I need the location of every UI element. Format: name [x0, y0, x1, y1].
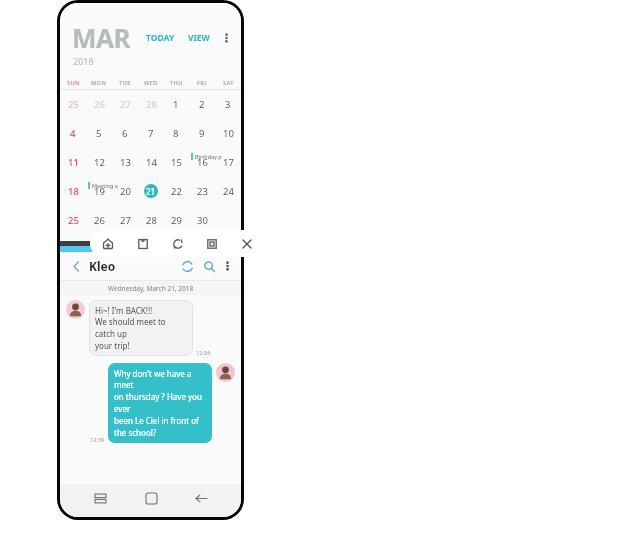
- button[interactable]: 30: [189, 207, 215, 236]
- button[interactable]: 25: [60, 91, 86, 120]
- staticText: 12:34: [196, 349, 211, 356]
- staticText: 9: [199, 127, 205, 140]
- staticText: 28: [146, 214, 157, 227]
- staticText: 2: [199, 98, 205, 111]
- button[interactable]: 24: [215, 178, 241, 207]
- staticText: 21: [146, 186, 156, 197]
- button[interactable]: 2: [189, 91, 215, 120]
- staticText: 4: [70, 127, 76, 140]
- staticText: VIEW: [188, 32, 210, 44]
- button[interactable]: 1: [163, 91, 189, 120]
- button[interactable]: 12: [86, 149, 112, 178]
- button[interactable]: 28: [138, 207, 164, 236]
- button[interactable]: 19: [86, 178, 112, 207]
- staticText: 24: [223, 185, 234, 198]
- button[interactable]: Refresh: [168, 234, 188, 254]
- button[interactable]: 29: [163, 207, 189, 236]
- staticText: WED: [144, 79, 158, 87]
- button[interactable]: Recents: [89, 487, 111, 509]
- staticText: 27: [120, 214, 131, 227]
- staticText: 19: [94, 185, 105, 198]
- staticText: SUN: [67, 79, 80, 87]
- button[interactable]: 26: [86, 207, 112, 236]
- staticText: 23: [197, 185, 208, 198]
- button[interactable]: More: [221, 260, 233, 272]
- button[interactable]: 21: [138, 178, 164, 207]
- button[interactable]: 4: [60, 120, 86, 149]
- button[interactable]: 26: [86, 91, 112, 120]
- staticText: 22: [171, 185, 182, 198]
- staticText: 11: [68, 156, 79, 169]
- staticText: 13: [120, 156, 131, 169]
- staticText: Birthday p: [195, 153, 222, 160]
- staticText: 15: [171, 156, 182, 169]
- staticText: 30: [197, 214, 208, 227]
- button[interactable]: Hi~! I'm BACK!!! We should meet to catch…: [89, 300, 193, 356]
- staticText: SAT: [223, 79, 234, 87]
- staticText: 12: [94, 156, 105, 169]
- staticText: TUE: [119, 79, 131, 87]
- staticText: Hi~! I'm BACK!!! We should meet to catch…: [95, 305, 187, 351]
- button[interactable]: 16: [189, 149, 215, 178]
- button[interactable]: 23: [189, 178, 215, 207]
- button[interactable]: Back: [68, 258, 84, 274]
- button[interactable]: 25: [60, 207, 86, 236]
- button[interactable]: 5: [86, 120, 112, 149]
- staticText: 1: [173, 98, 179, 111]
- staticText: 27: [120, 98, 131, 111]
- button[interactable]: 28: [138, 91, 164, 120]
- button[interactable]: 22: [163, 178, 189, 207]
- button[interactable]: 8: [163, 120, 189, 149]
- staticText: 3: [225, 98, 231, 111]
- button[interactable]: 17: [215, 149, 241, 178]
- button[interactable]: Search: [201, 258, 217, 274]
- button[interactable]: Home: [98, 234, 118, 254]
- button[interactable]: Stop: [202, 234, 222, 254]
- button[interactable]: VIEW: [186, 30, 212, 46]
- staticText: 20: [120, 185, 131, 198]
- button[interactable]: Close: [237, 234, 257, 254]
- button[interactable]: 15: [163, 149, 189, 178]
- staticText: FRI: [197, 79, 207, 87]
- button[interactable]: 27: [112, 91, 138, 120]
- button[interactable]: Back: [190, 487, 212, 509]
- staticText: 12:39: [90, 436, 105, 443]
- button[interactable]: 20: [112, 178, 138, 207]
- staticText: 26: [94, 214, 105, 227]
- button[interactable]: Bookmark: [133, 234, 153, 254]
- staticText: 2018: [73, 55, 94, 67]
- button[interactable]: 10: [215, 120, 241, 149]
- button[interactable]: 3: [215, 91, 241, 120]
- button[interactable]: 13: [112, 149, 138, 178]
- staticText: 18: [68, 185, 79, 198]
- staticText: TODAY: [146, 32, 175, 44]
- button[interactable]: 11: [60, 149, 86, 178]
- staticText: 16: [197, 156, 208, 169]
- staticText: MON: [91, 79, 107, 87]
- button[interactable]: Why don't we have a meet on thursday ? H…: [108, 363, 212, 443]
- staticText: 28: [146, 98, 157, 111]
- button[interactable]: 27: [112, 207, 138, 236]
- button[interactable]: More options: [220, 32, 232, 44]
- staticText: Kleo: [89, 258, 116, 274]
- staticText: 26: [94, 98, 105, 111]
- staticText: 10: [223, 127, 234, 140]
- button[interactable]: Call: [179, 258, 195, 274]
- button[interactable]: 6: [112, 120, 138, 149]
- staticText: 14: [146, 156, 157, 169]
- staticText: Why don't we have a meet on thursday ? H…: [114, 368, 206, 438]
- button[interactable]: 14: [138, 149, 164, 178]
- staticText: 29: [171, 214, 182, 227]
- button[interactable]: TODAY: [144, 30, 177, 46]
- button[interactable]: Home: [140, 487, 162, 509]
- staticText: THU: [170, 79, 183, 87]
- staticText: 25: [68, 98, 79, 111]
- staticText: Wednesday, March 21, 2018: [108, 284, 194, 293]
- staticText: 17: [223, 156, 234, 169]
- button[interactable]: 18: [60, 178, 86, 207]
- button[interactable]: 7: [138, 120, 164, 149]
- staticText: MAR: [72, 20, 131, 55]
- staticText: 5: [96, 127, 102, 140]
- staticText: Meeting a: [92, 182, 118, 189]
- button[interactable]: 9: [189, 120, 215, 149]
